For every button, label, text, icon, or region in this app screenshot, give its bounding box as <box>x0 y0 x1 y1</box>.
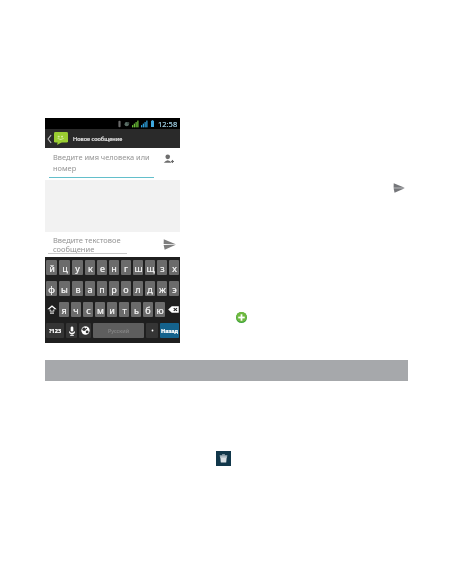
staticText: а <box>87 283 93 295</box>
button[interactable]: з <box>157 260 167 275</box>
button[interactable] <box>167 302 179 317</box>
button[interactable]: у <box>72 260 83 275</box>
button[interactable]: э <box>169 281 179 296</box>
staticText: Введите имя человека или номер <box>53 152 158 173</box>
staticText: л <box>135 283 141 295</box>
button[interactable]: Send <box>390 179 407 196</box>
button[interactable]: ж <box>157 281 167 296</box>
button[interactable]: ы <box>59 281 70 296</box>
staticText: з <box>160 262 165 274</box>
staticText: р <box>111 283 117 295</box>
button[interactable]: с <box>83 302 93 317</box>
staticText: Русский <box>108 327 130 334</box>
staticText: щ <box>146 262 155 274</box>
button[interactable]: в <box>72 281 83 296</box>
button[interactable]: ч <box>71 302 81 317</box>
button[interactable]: Русский <box>93 323 144 338</box>
staticText: ?123 <box>49 327 62 334</box>
button[interactable] <box>46 302 57 317</box>
staticText: Введите текстовое сообщение <box>53 235 152 255</box>
button[interactable]: а <box>85 281 95 296</box>
staticText: х <box>172 262 177 274</box>
button[interactable]: и <box>107 302 117 317</box>
button[interactable]: я <box>59 302 69 317</box>
staticText: Назад <box>161 327 179 334</box>
button[interactable]: Send message <box>161 236 178 253</box>
button[interactable]: к <box>85 260 95 275</box>
button[interactable]: й <box>46 260 57 275</box>
button[interactable]: е <box>97 260 107 275</box>
staticText: п <box>99 283 105 295</box>
button[interactable]: р <box>109 281 119 296</box>
button[interactable]: н <box>109 260 119 275</box>
button[interactable]: д <box>145 281 155 296</box>
staticText: о <box>123 283 129 295</box>
button[interactable] <box>79 323 91 338</box>
staticText: н <box>111 262 117 274</box>
staticText: ш <box>134 262 143 274</box>
staticText: ж <box>159 283 166 295</box>
button[interactable]: х <box>169 260 179 275</box>
button[interactable] <box>146 323 158 338</box>
staticText: е <box>100 262 105 274</box>
staticText: ь <box>134 304 139 316</box>
staticText: ы <box>61 283 68 295</box>
button[interactable] <box>66 323 77 338</box>
button[interactable]: Add <box>234 310 249 325</box>
button[interactable]: л <box>133 281 143 296</box>
button[interactable]: ш <box>133 260 143 275</box>
button[interactable]: ф <box>46 281 57 296</box>
staticText: м <box>97 304 104 316</box>
button[interactable]: г <box>121 260 131 275</box>
button[interactable]: ю <box>155 302 165 317</box>
staticText: Новое сообщение <box>73 135 123 143</box>
staticText: ч <box>73 304 79 316</box>
staticText: у <box>75 262 80 274</box>
staticText: ф <box>48 283 55 295</box>
staticText: с <box>86 304 91 316</box>
staticText: э <box>172 283 177 295</box>
staticText: я <box>61 304 67 316</box>
button[interactable]: Add contact <box>161 152 175 166</box>
button[interactable]: Новое сообщение <box>45 129 180 148</box>
button[interactable]: Delete <box>216 451 231 466</box>
staticText: 12:58 <box>158 119 178 129</box>
button[interactable]: м <box>95 302 105 317</box>
button[interactable]: ц <box>59 260 70 275</box>
staticText: ц <box>62 262 68 274</box>
button[interactable]: ь <box>131 302 141 317</box>
staticText: й <box>49 262 55 274</box>
button[interactable]: п <box>97 281 107 296</box>
staticText: к <box>88 262 93 274</box>
staticText: ю <box>156 304 164 316</box>
button[interactable]: т <box>119 302 129 317</box>
staticText: г <box>124 262 128 274</box>
button[interactable]: щ <box>145 260 155 275</box>
staticText: в <box>75 283 81 295</box>
button[interactable]: Назад <box>160 323 179 338</box>
button[interactable]: ?123 <box>46 323 64 338</box>
staticText: б <box>145 304 151 316</box>
button[interactable]: б <box>143 302 153 317</box>
button[interactable]: о <box>121 281 131 296</box>
staticText: д <box>147 283 153 295</box>
staticText: т <box>122 304 127 316</box>
staticText: и <box>109 304 115 316</box>
